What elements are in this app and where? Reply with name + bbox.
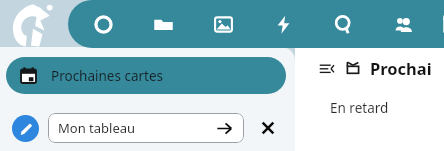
staticText: Prochai [370, 57, 432, 79]
button[interactable]: Logo [6, 2, 58, 48]
button[interactable]: Mon tableau [48, 113, 244, 143]
button[interactable]: Activity [268, 9, 298, 39]
button[interactable]: Close [255, 115, 281, 141]
staticText: Mon tableau [58, 119, 136, 137]
button[interactable]: Files [148, 9, 178, 39]
button[interactable]: Edit [12, 115, 39, 142]
button[interactable]: Home [88, 9, 118, 39]
button[interactable]: Contacts [388, 9, 418, 39]
staticText: Prochaines cartes [51, 67, 164, 85]
button[interactable]: Search [328, 9, 358, 39]
button[interactable]: Collapse [317, 59, 335, 77]
staticText: En retard [330, 99, 389, 117]
button[interactable]: Photos [208, 9, 238, 39]
button[interactable]: Submit [214, 118, 234, 138]
button[interactable]: Prochaines cartes [6, 57, 286, 94]
